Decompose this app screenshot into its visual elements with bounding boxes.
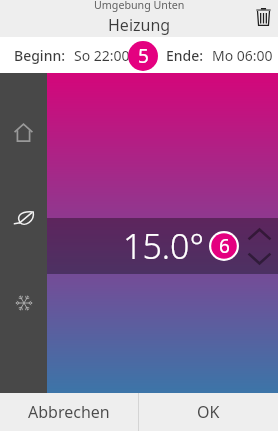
- button[interactable]: Schrittnummer 6: [209, 231, 239, 261]
- staticText: Ende:: [166, 46, 204, 65]
- staticText: Heizung: [108, 14, 171, 35]
- button[interactable]: Löschen: [246, 3, 278, 35]
- button[interactable]: Frostschutz: [6, 285, 41, 320]
- button[interactable]: Abbrechen: [0, 393, 138, 431]
- staticText: So 22:00: [74, 46, 130, 65]
- button[interactable]: 5: [128, 41, 158, 71]
- button[interactable]: Temperatur anpassen: [248, 228, 271, 265]
- staticText: Mo 06:00: [212, 46, 273, 65]
- button[interactable]: 15.0°: [47, 218, 278, 274]
- staticText: 6: [219, 233, 230, 259]
- button[interactable]: OK: [139, 393, 278, 431]
- button[interactable]: Eco: [6, 200, 41, 235]
- button[interactable]: Komfort: [6, 115, 41, 150]
- staticText: Beginn:: [14, 46, 66, 65]
- staticText: Umgebung Unten: [94, 0, 185, 13]
- staticText: 5: [138, 43, 149, 69]
- staticText: Abbrechen: [28, 401, 110, 423]
- staticText: OK: [197, 401, 220, 423]
- staticText: 15.0°: [123, 223, 205, 269]
